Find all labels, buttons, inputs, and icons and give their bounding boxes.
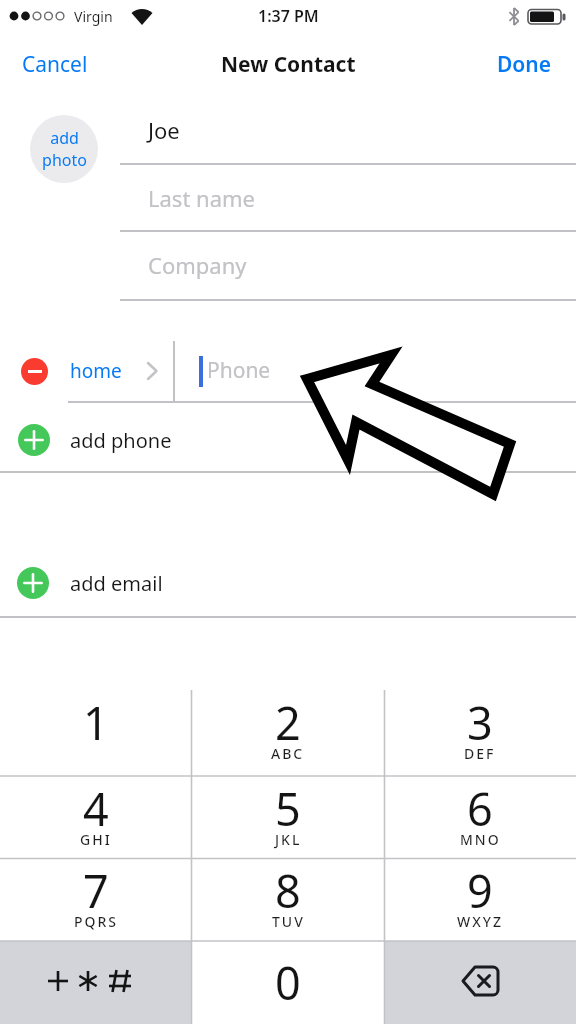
staticText: 3 xyxy=(467,692,493,753)
button[interactable] xyxy=(0,776,192,860)
button[interactable]: add photo xyxy=(30,115,98,183)
staticText: Virgin xyxy=(74,7,113,26)
button[interactable]: add phone xyxy=(70,423,270,457)
button[interactable]: Done xyxy=(444,46,552,82)
staticText: Cancel xyxy=(22,50,88,79)
button[interactable]: Phone xyxy=(207,350,547,390)
staticText: 0 xyxy=(275,952,301,1013)
staticText: ABC xyxy=(271,744,305,763)
staticText: 6 xyxy=(467,778,493,839)
staticText: 7 xyxy=(83,860,109,921)
staticText: 9 xyxy=(467,860,493,921)
button[interactable] xyxy=(192,776,384,860)
button[interactable]: Last name xyxy=(148,177,568,219)
button[interactable]: home xyxy=(70,354,142,388)
staticText: home xyxy=(70,358,122,384)
staticText: 8 xyxy=(275,860,301,921)
button[interactable]: Cancel xyxy=(22,46,132,82)
button[interactable] xyxy=(0,941,191,1024)
button[interactable] xyxy=(192,941,384,1024)
button[interactable] xyxy=(0,690,192,774)
staticText: WXYZ xyxy=(457,912,503,931)
button[interactable]: Company xyxy=(148,244,568,286)
staticText: MNO xyxy=(460,830,501,849)
staticText: 1:37 PM xyxy=(258,5,319,27)
button[interactable] xyxy=(0,858,192,942)
staticText: add email xyxy=(70,570,163,597)
staticText: 4 xyxy=(83,778,109,839)
staticText: Last name xyxy=(148,183,255,213)
staticText: GHI xyxy=(80,830,112,849)
staticText: Phone xyxy=(207,356,271,385)
button[interactable] xyxy=(21,358,48,385)
button[interactable] xyxy=(384,690,576,774)
button[interactable] xyxy=(18,424,50,456)
staticText: Company xyxy=(148,250,247,280)
button[interactable] xyxy=(17,567,49,599)
staticText: 1 xyxy=(83,692,109,753)
staticText: 5 xyxy=(275,778,301,839)
button[interactable]: Joe xyxy=(148,109,568,151)
staticText: Done xyxy=(497,50,552,79)
staticText: New Contact xyxy=(221,50,356,79)
staticText: DEF xyxy=(464,744,496,763)
staticText: add phone xyxy=(70,427,172,454)
button[interactable] xyxy=(192,858,384,942)
button[interactable]: add email xyxy=(70,566,270,600)
staticText: JKL xyxy=(275,830,302,849)
staticText: add photo xyxy=(42,127,87,171)
staticText: Joe xyxy=(148,115,180,145)
staticText: TUV xyxy=(272,912,305,931)
button[interactable] xyxy=(385,941,576,1024)
staticText: PQRS xyxy=(74,912,119,931)
button[interactable] xyxy=(384,776,576,860)
staticText: 2 xyxy=(275,692,301,753)
button[interactable] xyxy=(192,690,384,774)
button[interactable] xyxy=(384,858,576,942)
